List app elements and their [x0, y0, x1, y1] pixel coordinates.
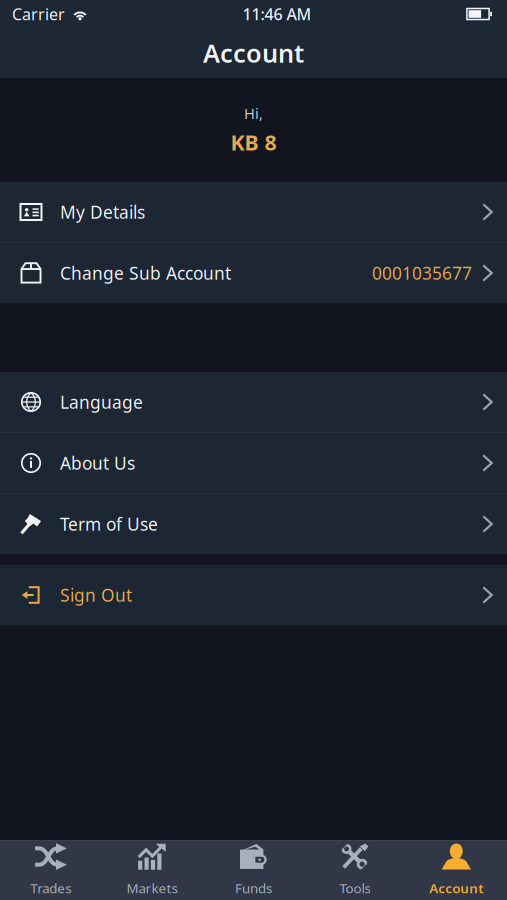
button[interactable]: Markets — [101, 840, 203, 900]
button[interactable]: Change Sub Account — [0, 243, 507, 303]
staticText: Sign Out — [60, 583, 132, 606]
button[interactable]: Sign Out — [0, 565, 507, 625]
staticText: Markets — [127, 879, 178, 897]
staticText: Account — [203, 36, 304, 70]
staticText: Change Sub Account — [60, 261, 231, 284]
staticText: About Us — [60, 451, 135, 474]
button[interactable]: Trades — [0, 840, 101, 900]
staticText: 0001035677 — [372, 261, 472, 284]
staticText: Trades — [30, 879, 71, 897]
button[interactable]: Account — [406, 840, 507, 900]
staticText: 11:46 AM — [242, 3, 311, 25]
button[interactable]: Term of Use — [0, 494, 507, 554]
staticText: Carrier — [12, 3, 65, 25]
staticText: Funds — [235, 879, 272, 897]
staticText: KB 8 — [230, 128, 276, 156]
staticText: My Details — [60, 200, 145, 223]
button[interactable]: About Us — [0, 433, 507, 493]
button[interactable]: My Details — [0, 182, 507, 242]
staticText: Tools — [339, 879, 370, 897]
button[interactable]: Language — [0, 372, 507, 432]
staticText: Account — [429, 879, 483, 897]
staticText: Term of Use — [60, 512, 158, 535]
staticText: Hi, — [244, 104, 263, 123]
staticText: Language — [60, 390, 143, 413]
button[interactable]: Tools — [304, 840, 406, 900]
button[interactable]: Funds — [203, 840, 304, 900]
